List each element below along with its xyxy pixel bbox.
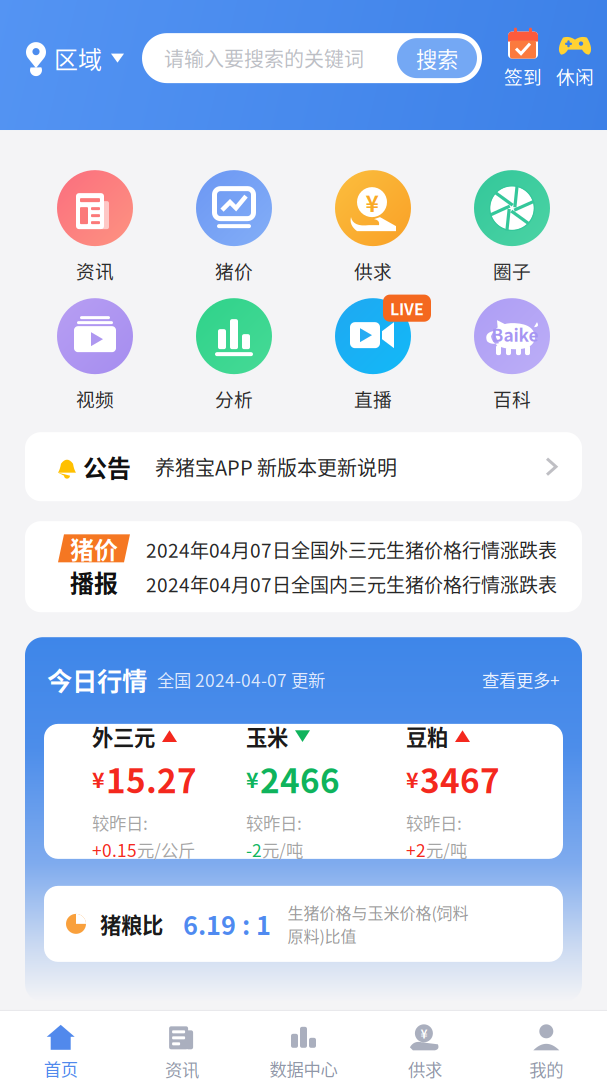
staticText: 生猪价格与玉米价格(饲料原料)比值: [287, 901, 468, 947]
staticText: 2024年04月07日全国内三元生猪价格行情涨跌表: [146, 570, 557, 598]
staticText: 供求: [354, 257, 392, 284]
staticText: 玉米: [246, 721, 288, 752]
staticText: 圈子: [493, 257, 531, 284]
staticText: 全国 2024-04-07 更新: [157, 667, 325, 692]
staticText: 猪价: [215, 257, 253, 284]
staticText: 视频: [76, 385, 114, 412]
staticText: 豆粕: [406, 721, 448, 752]
staticText: 猪价: [70, 531, 118, 566]
staticText: ¥: [365, 186, 378, 218]
staticText: 2024年04月07日全国外三元生猪价格行情涨跌表: [146, 536, 557, 563]
staticText: 休闲: [556, 63, 594, 90]
button[interactable]: 搜索: [397, 38, 477, 78]
staticText: 分析: [215, 385, 253, 412]
staticText: 搜索: [416, 43, 458, 74]
staticText: 数据中心: [269, 1056, 337, 1080]
button[interactable]: 公告: [25, 432, 582, 501]
button[interactable]: 视频: [25, 298, 164, 412]
staticText: 6.19 : 1: [183, 905, 271, 942]
staticText: 我的: [529, 1056, 563, 1080]
staticText: 元/公斤: [137, 837, 195, 862]
staticText: ¥: [92, 763, 105, 794]
staticText: ¥: [406, 763, 419, 794]
staticText: +0.15: [92, 837, 137, 862]
staticText: ¥: [420, 1025, 427, 1042]
staticText: 播报: [70, 564, 118, 599]
button[interactable]: 签到: [498, 27, 548, 90]
button[interactable]: 查看更多+: [482, 667, 560, 692]
staticText: 首页: [44, 1056, 78, 1080]
staticText: 区域: [54, 41, 102, 76]
button[interactable]: 我的: [486, 1023, 607, 1080]
button[interactable]: 区域: [0, 41, 142, 76]
staticText: 15.27: [106, 755, 197, 803]
button[interactable]: 资讯: [25, 170, 164, 284]
staticText: 较昨日:: [406, 810, 462, 835]
staticText: 元/吨: [262, 837, 303, 862]
staticText: 签到: [504, 63, 542, 90]
button[interactable]: 资讯: [121, 1023, 243, 1080]
staticText: 公告: [83, 449, 131, 484]
staticText: 资讯: [165, 1056, 199, 1080]
button[interactable]: 首页: [0, 1024, 121, 1080]
staticText: ¥: [246, 763, 259, 794]
staticText: 百科: [493, 385, 531, 412]
button[interactable]: 分析: [164, 298, 303, 412]
button[interactable]: 休闲: [550, 27, 600, 90]
staticText: 查看更多+: [482, 667, 560, 692]
button[interactable]: LIVE: [303, 298, 442, 412]
button[interactable]: ¥: [364, 1023, 486, 1080]
staticText: +2: [406, 837, 426, 862]
staticText: 今日行情: [47, 661, 147, 698]
staticText: 外三元: [92, 721, 155, 752]
staticText: Baike: [491, 322, 538, 347]
staticText: 直播: [354, 385, 392, 412]
button[interactable]: ¥: [303, 170, 442, 284]
staticText: 3467: [420, 755, 500, 803]
button[interactable]: Baike: [442, 298, 581, 412]
staticText: 猪粮比: [100, 908, 163, 939]
button[interactable]: 圈子: [442, 170, 581, 284]
button[interactable]: 数据中心: [243, 1024, 364, 1080]
staticText: 较昨日:: [92, 810, 148, 835]
staticText: 元/吨: [426, 837, 467, 862]
staticText: 供求: [408, 1056, 442, 1080]
staticText: 较昨日:: [246, 810, 302, 835]
staticText: 请输入要搜索的关键词: [164, 44, 364, 73]
staticText: 资讯: [76, 257, 114, 284]
button[interactable]: 猪价: [164, 170, 303, 284]
staticText: 养猪宝APP 新版本更新说明: [155, 452, 397, 481]
staticText: -2: [246, 837, 262, 862]
staticText: LIVE: [390, 297, 424, 320]
staticText: 2466: [260, 755, 340, 803]
